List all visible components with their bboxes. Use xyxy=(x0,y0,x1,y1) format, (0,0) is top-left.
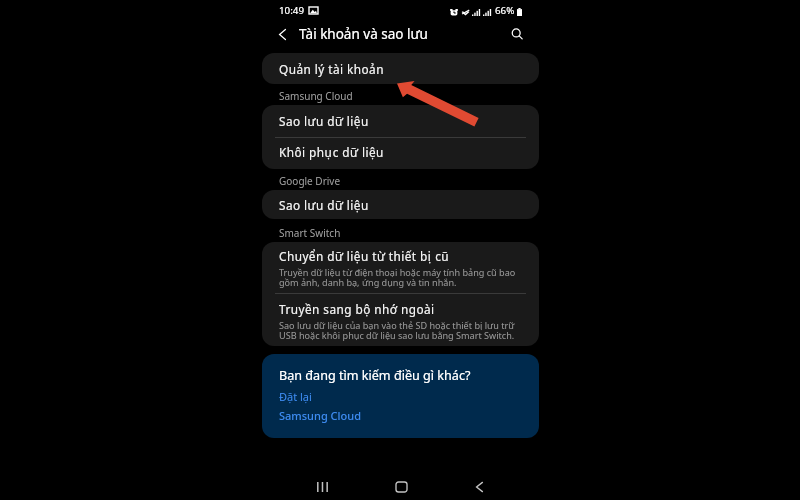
button[interactable]: Recents xyxy=(309,474,335,500)
staticText: Bạn đang tìm kiếm điều gì khác? xyxy=(279,367,471,384)
button[interactable]: Search xyxy=(503,20,531,48)
staticText: Sao lưu dữ liệu của bạn vào thẻ SD hoặc … xyxy=(279,319,518,341)
button[interactable]: Back xyxy=(268,20,296,48)
staticText: Khôi phục dữ liệu xyxy=(279,144,384,160)
staticText: Tài khoản và sao lưu xyxy=(299,25,428,43)
button[interactable]: Back xyxy=(466,474,492,500)
button[interactable]: Sao lưu dữ liệu xyxy=(262,105,539,137)
staticText: 66% xyxy=(495,4,515,17)
button[interactable]: Samsung Cloud xyxy=(279,408,361,423)
staticText: Samsung Cloud xyxy=(279,89,353,103)
button[interactable]: Chuyển dữ liệu từ thiết bị cũ xyxy=(262,242,539,293)
staticText: Google Drive xyxy=(279,174,341,188)
staticText: Sao lưu dữ liệu xyxy=(279,197,369,213)
staticText: Quản lý tài khoản xyxy=(279,61,384,77)
staticText: Truyền dữ liệu từ điện thoại hoặc máy tí… xyxy=(279,266,518,288)
button[interactable]: Truyền sang bộ nhớ ngoài xyxy=(262,294,539,346)
button[interactable]: Home xyxy=(388,474,414,500)
button[interactable]: Quản lý tài khoản xyxy=(262,53,539,84)
staticText: 10:49 xyxy=(279,4,305,17)
staticText: Smart Switch xyxy=(279,226,341,240)
button[interactable]: Khôi phục dữ liệu xyxy=(262,138,539,169)
staticText: Chuyển dữ liệu từ thiết bị cũ xyxy=(279,248,450,264)
button[interactable]: Sao lưu dữ liệu xyxy=(262,190,539,219)
staticText: Sao lưu dữ liệu xyxy=(279,113,369,129)
staticText: Truyền sang bộ nhớ ngoài xyxy=(279,301,435,317)
button[interactable]: Đặt lại xyxy=(279,389,312,404)
